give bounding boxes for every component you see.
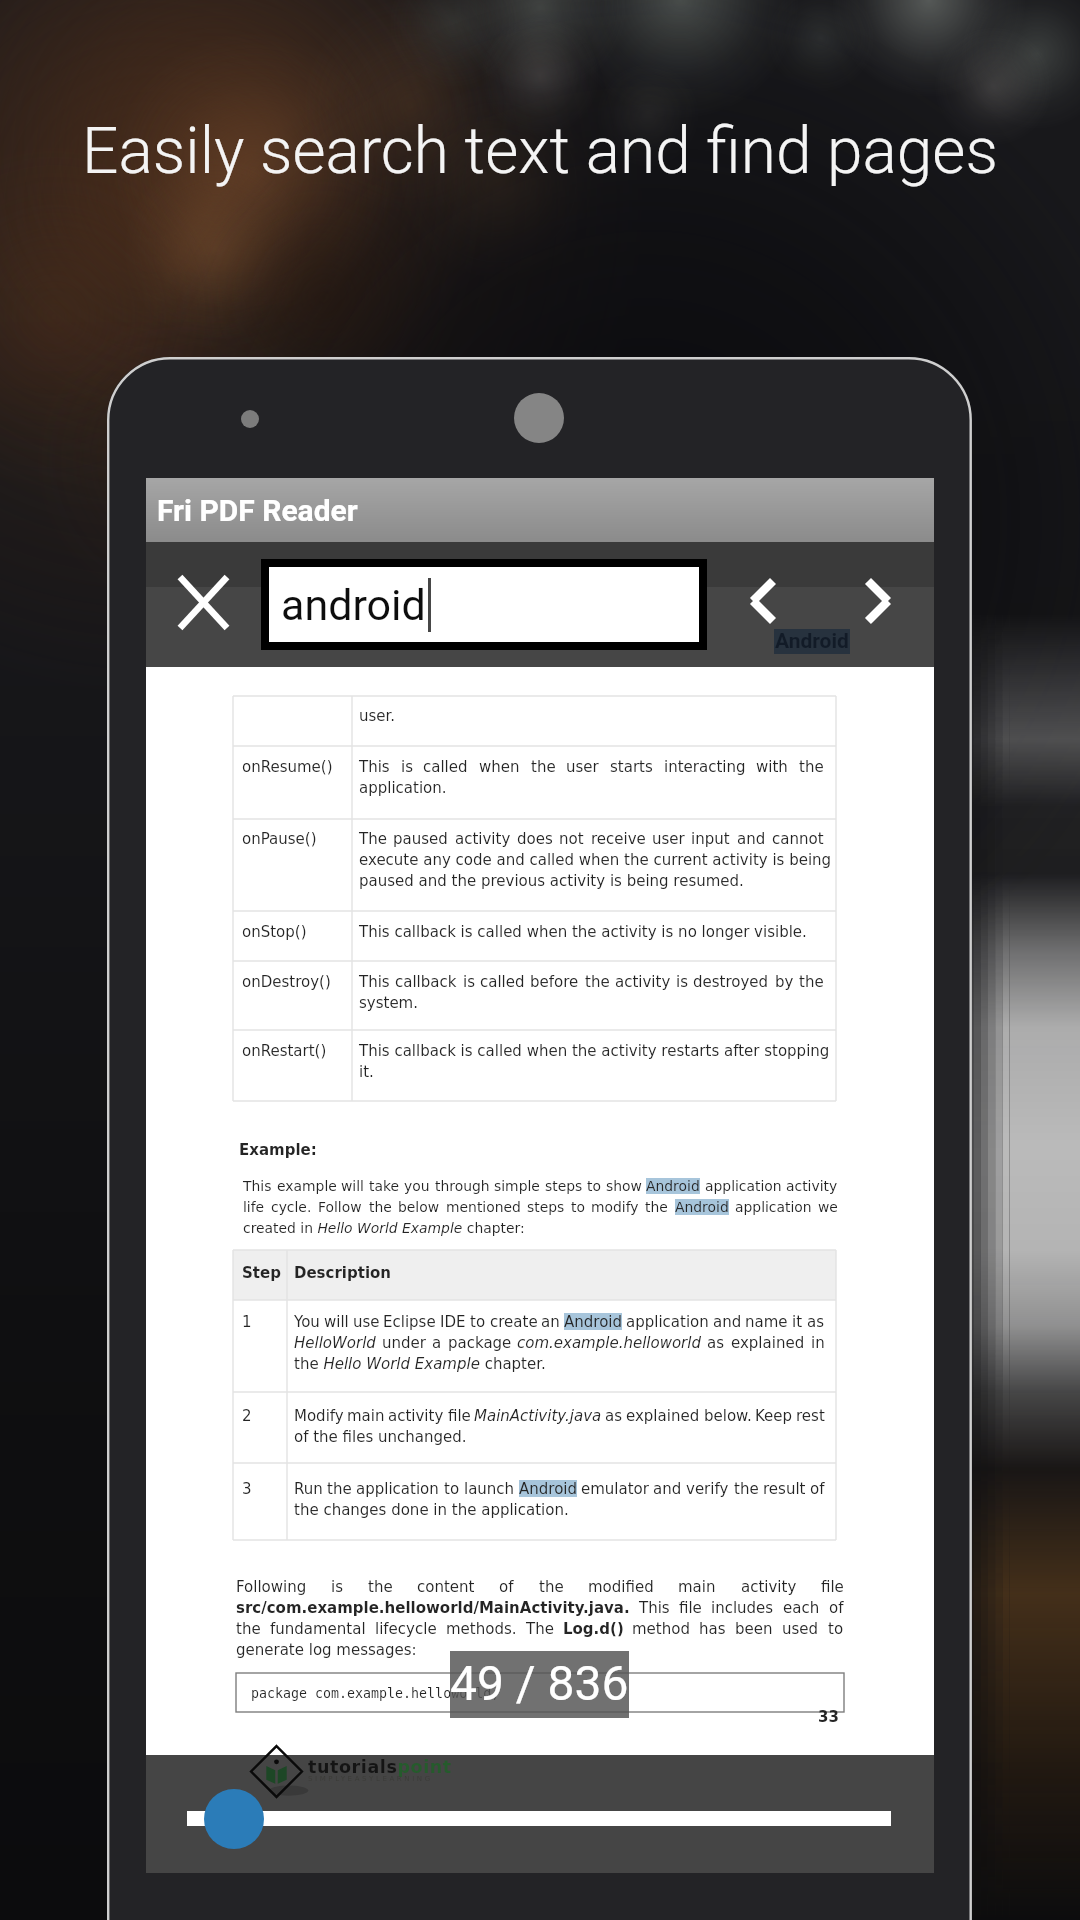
staticText: modify xyxy=(591,1199,639,1215)
staticText: application. xyxy=(359,779,447,796)
staticText: Description xyxy=(294,1264,392,1281)
staticText: as xyxy=(807,1313,825,1330)
staticText: lifecycle xyxy=(375,1620,437,1637)
staticText: with xyxy=(756,758,788,775)
staticText: receive xyxy=(591,830,646,847)
staticText: called xyxy=(480,973,525,990)
staticText: Android xyxy=(519,1480,577,1497)
staticText: the xyxy=(368,1578,393,1595)
staticText: to xyxy=(470,1313,486,1330)
staticText: explained xyxy=(731,1334,805,1351)
staticText: to xyxy=(828,1620,844,1637)
staticText: onDestroy() xyxy=(242,973,331,990)
staticText: 2 xyxy=(242,1407,252,1424)
staticText: package xyxy=(448,1334,512,1351)
staticText: 1 xyxy=(242,1313,252,1330)
staticText: This xyxy=(639,1599,670,1616)
staticText: is xyxy=(331,1578,343,1595)
staticText: and xyxy=(737,830,766,847)
staticText: Android xyxy=(646,1178,700,1194)
staticText: to xyxy=(587,1178,601,1194)
staticText: simple xyxy=(494,1178,540,1194)
staticText: take xyxy=(369,1178,400,1194)
staticText: file xyxy=(448,1407,471,1424)
button[interactable]: Close search xyxy=(172,571,234,633)
staticText: through xyxy=(435,1178,490,1194)
staticText: com.example.helloworld xyxy=(517,1334,701,1351)
staticText: Eclipse xyxy=(383,1313,436,1330)
staticText: This callback is called when the activit… xyxy=(359,1042,830,1059)
button[interactable]: Next match xyxy=(848,571,908,631)
staticText: used xyxy=(782,1620,819,1637)
staticText: show xyxy=(606,1178,642,1194)
staticText: activity xyxy=(615,973,671,990)
staticText: below xyxy=(398,1199,440,1215)
staticText: content xyxy=(417,1578,475,1595)
staticText: Follow xyxy=(318,1199,362,1215)
staticText: user. xyxy=(359,707,396,724)
staticText: below. xyxy=(704,1407,752,1424)
staticText: the xyxy=(799,758,824,775)
staticText: create xyxy=(490,1313,538,1330)
staticText: the xyxy=(369,1199,392,1215)
staticText: the xyxy=(539,1578,564,1595)
staticText: is xyxy=(676,973,688,990)
staticText: a xyxy=(432,1334,442,1351)
staticText: This xyxy=(359,758,390,775)
staticText: of xyxy=(499,1578,514,1595)
staticText: Keep xyxy=(755,1407,793,1424)
staticText: fundamental xyxy=(270,1620,366,1637)
staticText: use xyxy=(353,1313,380,1330)
button[interactable]: Page slider xyxy=(204,1789,264,1849)
staticText: will xyxy=(324,1313,349,1330)
staticText: main xyxy=(347,1407,385,1424)
staticText: by xyxy=(775,973,794,990)
staticText: to xyxy=(571,1199,585,1215)
staticText: application xyxy=(735,1199,812,1215)
staticText: when xyxy=(479,758,520,775)
staticText: paused xyxy=(393,830,448,847)
staticText: the xyxy=(585,973,610,990)
staticText: Android xyxy=(675,1199,729,1215)
staticText: SIMPLYEASYLEARNING xyxy=(308,1775,433,1783)
staticText: onPause() xyxy=(242,830,317,847)
button[interactable]: android xyxy=(269,567,699,642)
staticText: cannot xyxy=(772,830,824,847)
staticText: generate log messages: xyxy=(236,1641,417,1658)
staticText: it. xyxy=(359,1063,374,1080)
staticText: Modify xyxy=(294,1407,344,1424)
staticText: the xyxy=(327,1480,352,1497)
staticText: as xyxy=(707,1334,725,1351)
button[interactable]: Fri PDF Reader xyxy=(146,478,934,542)
staticText: src/com.example.helloworld/MainActivity.… xyxy=(236,1599,630,1616)
staticText: Android xyxy=(564,1313,622,1330)
staticText: Run xyxy=(294,1480,323,1497)
staticText: explained xyxy=(626,1407,700,1424)
staticText: application xyxy=(626,1313,709,1330)
staticText: onResume() xyxy=(242,758,333,775)
staticText: You xyxy=(294,1313,320,1330)
staticText: steps xyxy=(545,1178,583,1194)
staticText: the xyxy=(645,1199,668,1215)
staticText: it xyxy=(792,1313,803,1330)
staticText: application xyxy=(356,1480,439,1497)
staticText: is xyxy=(401,758,413,775)
staticText: callback xyxy=(395,973,457,990)
staticText: before xyxy=(530,973,579,990)
staticText: Fri PDF Reader xyxy=(157,493,358,528)
staticText: MainActivity.java xyxy=(474,1407,602,1424)
button[interactable]: Previous match xyxy=(733,571,793,631)
staticText: application xyxy=(705,1178,782,1194)
staticText: activity xyxy=(455,830,511,847)
staticText: 33 xyxy=(818,1708,839,1725)
staticText: the changes done in the application. xyxy=(294,1501,569,1518)
staticText: activity xyxy=(786,1178,838,1194)
staticText: as xyxy=(605,1407,623,1424)
staticText: Step xyxy=(242,1264,281,1281)
staticText: main xyxy=(678,1578,716,1595)
staticText: user xyxy=(566,758,599,775)
staticText: paused and the previous activity is bein… xyxy=(359,872,744,889)
staticText: and xyxy=(653,1480,682,1497)
staticText: Log.d() xyxy=(563,1620,624,1637)
staticText: The xyxy=(359,830,387,847)
